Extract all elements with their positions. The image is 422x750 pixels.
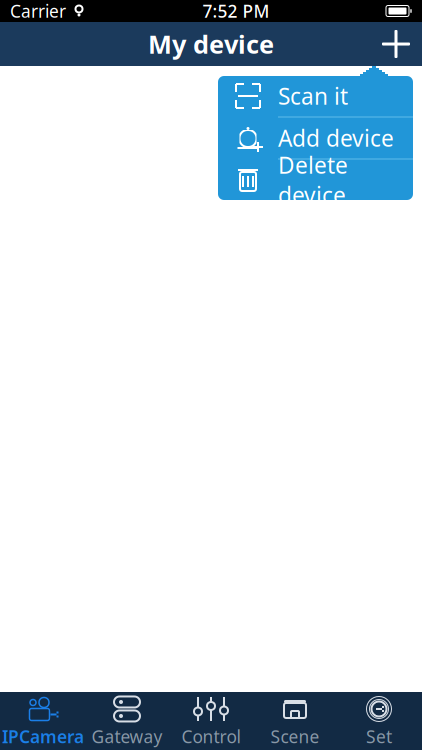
button[interactable]: Control bbox=[169, 692, 253, 750]
staticText: Control bbox=[181, 725, 240, 748]
button[interactable]: Set bbox=[337, 692, 421, 750]
staticText: Add device bbox=[278, 123, 394, 153]
staticText: Delete device bbox=[278, 150, 348, 210]
staticText: IPCamera bbox=[2, 725, 84, 748]
button[interactable]: Gateway bbox=[85, 692, 169, 750]
button[interactable]: Scan it bbox=[218, 75, 413, 116]
staticText: Gateway bbox=[91, 725, 162, 748]
button[interactable]: Delete device bbox=[218, 159, 413, 200]
button[interactable]: IPCamera bbox=[1, 692, 85, 750]
button[interactable]: Scene bbox=[253, 692, 337, 750]
button[interactable]: Add bbox=[370, 22, 422, 66]
staticText: My device bbox=[148, 27, 274, 61]
staticText: 7:52 PM bbox=[202, 0, 269, 22]
staticText: Scene bbox=[270, 725, 319, 748]
staticText: Scan it bbox=[278, 81, 348, 111]
staticText: Carrier bbox=[10, 0, 66, 22]
button[interactable]: Add device bbox=[218, 117, 413, 158]
staticText: Set bbox=[366, 725, 392, 748]
